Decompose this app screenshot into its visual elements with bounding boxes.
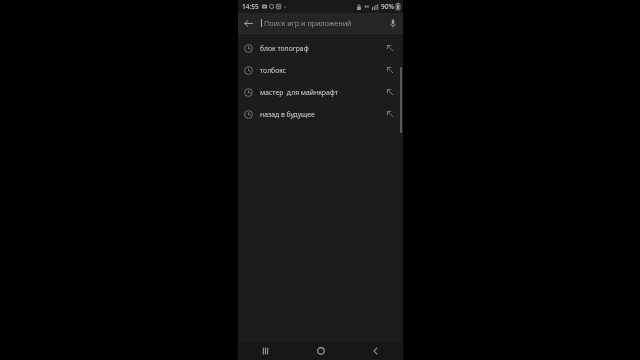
button[interactable]: блок топограф	[238, 37, 403, 59]
button[interactable]: Главный экран	[293, 342, 348, 360]
button[interactable]: Недавние приложения	[238, 342, 293, 360]
button[interactable]: толбокс	[238, 59, 403, 81]
staticText: назад в будущее	[260, 110, 380, 119]
button[interactable]: Вставить запрос	[380, 38, 400, 58]
button[interactable]: Вставить запрос	[380, 104, 400, 124]
button[interactable]: Назад	[238, 13, 258, 33]
staticText: толбокс	[260, 66, 380, 75]
button[interactable]: мастер для майнкрафт	[238, 81, 403, 103]
staticText: блок топограф	[260, 44, 380, 53]
button[interactable]: Поиск игр и приложений	[264, 18, 383, 28]
button[interactable]: Голосовой поиск	[383, 13, 403, 33]
button[interactable]: назад в будущее	[238, 103, 403, 125]
staticText: 90%	[381, 2, 394, 11]
button[interactable]: Вставить запрос	[380, 82, 400, 102]
staticText: 14:55	[242, 2, 259, 11]
button[interactable]: Назад	[348, 342, 403, 360]
button[interactable]: Вставить запрос	[380, 60, 400, 80]
staticText: Поиск игр и приложений	[264, 18, 352, 28]
staticText: мастер для майнкрафт	[260, 88, 380, 97]
